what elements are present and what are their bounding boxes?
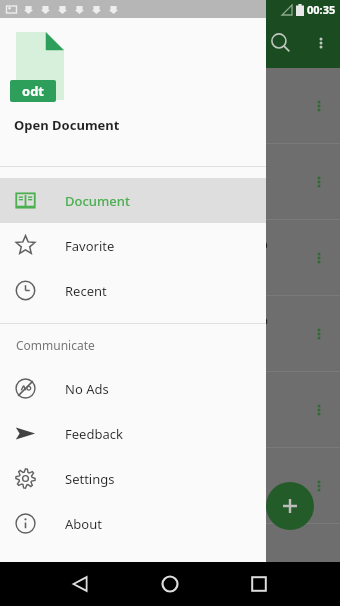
staticText: Settings bbox=[65, 470, 115, 488]
button[interactable]: Home bbox=[153, 567, 187, 601]
button[interactable]: Back bbox=[64, 567, 98, 601]
staticText: dp bbox=[252, 235, 268, 253]
button[interactable]: Item menu bbox=[310, 401, 328, 419]
button[interactable]: Recent apps bbox=[242, 567, 276, 601]
staticText: dp bbox=[252, 311, 268, 329]
button[interactable]: p bbox=[0, 144, 340, 220]
button[interactable]: Settings bbox=[0, 456, 266, 501]
button[interactable]: More options bbox=[312, 34, 330, 52]
staticText: About bbox=[65, 515, 102, 533]
button[interactable]: Item menu bbox=[0, 372, 340, 448]
button[interactable]: Item menu bbox=[310, 97, 328, 115]
staticText: 00:35 bbox=[307, 2, 336, 17]
button[interactable]: dp bbox=[0, 296, 340, 372]
staticText: odt bbox=[22, 82, 44, 100]
button[interactable]: No Ads bbox=[0, 366, 266, 411]
staticText: Recent bbox=[65, 282, 107, 300]
button[interactable]: Favorite bbox=[0, 223, 266, 268]
button[interactable]: Recent bbox=[0, 268, 266, 313]
button[interactable]: About bbox=[0, 501, 266, 546]
button[interactable]: Search bbox=[268, 30, 294, 56]
staticText: p bbox=[252, 159, 260, 177]
button[interactable]: Document bbox=[0, 178, 266, 223]
staticText: Document bbox=[65, 192, 130, 210]
button[interactable]: Item menu bbox=[310, 249, 328, 267]
staticText: Feedback bbox=[65, 425, 123, 443]
staticText: Open Document bbox=[14, 116, 120, 134]
staticText: No Ads bbox=[65, 380, 109, 398]
button[interactable]: Feedback bbox=[0, 411, 266, 456]
button[interactable]: Item menu bbox=[310, 325, 328, 343]
button[interactable]: Item menu bbox=[0, 68, 340, 144]
button[interactable]: Item menu bbox=[310, 173, 328, 191]
button[interactable]: dp bbox=[0, 220, 340, 296]
button[interactable]: Item menu bbox=[0, 448, 340, 524]
button[interactable]: Item menu bbox=[310, 477, 328, 495]
staticText: Communicate bbox=[16, 337, 95, 353]
button[interactable]: Add bbox=[266, 482, 314, 530]
staticText: Favorite bbox=[65, 237, 115, 255]
